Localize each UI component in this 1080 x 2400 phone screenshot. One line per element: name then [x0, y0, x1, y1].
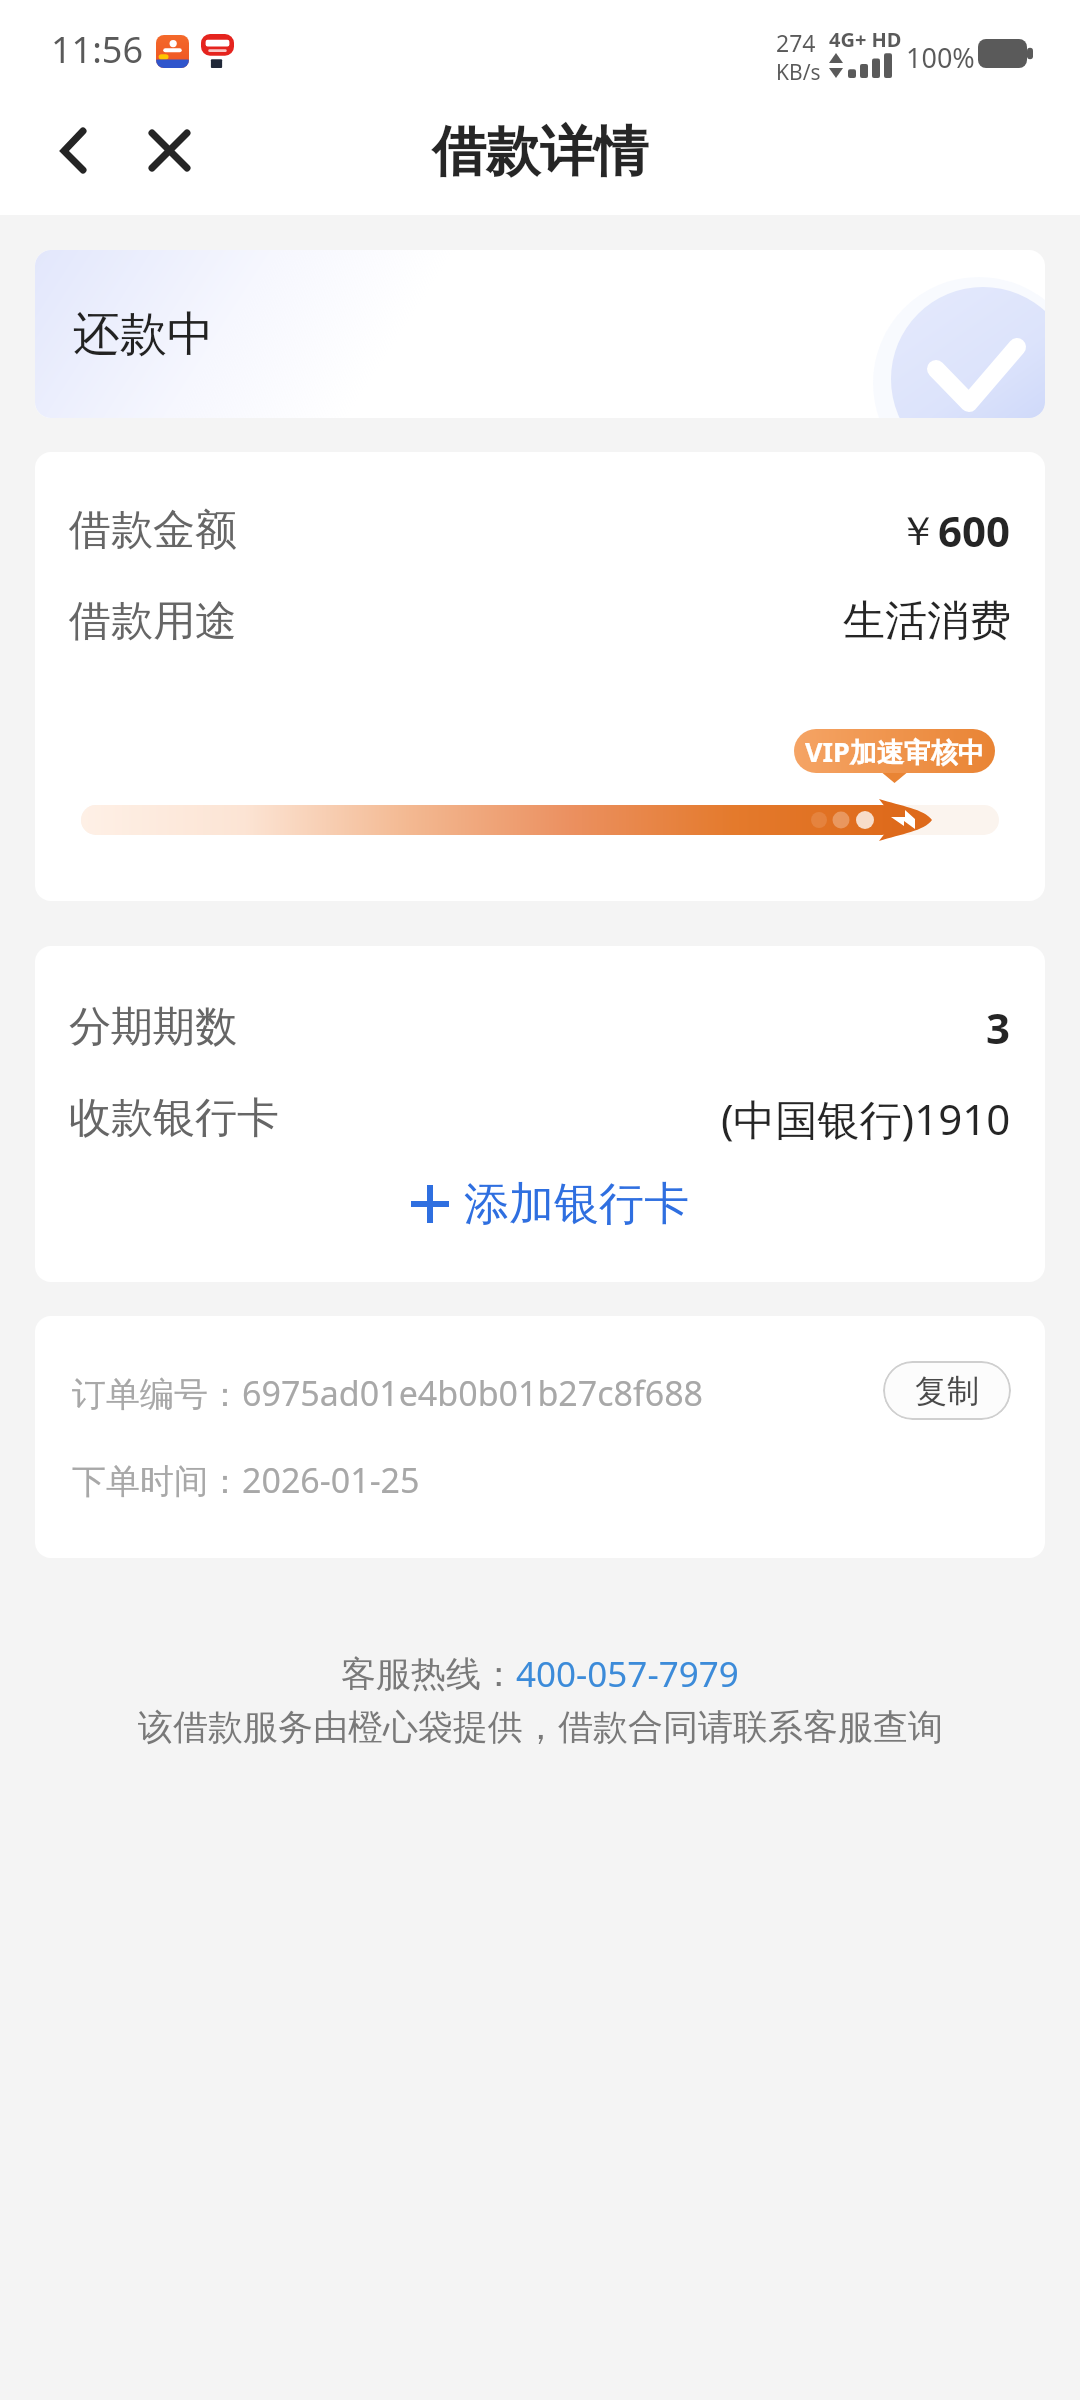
staticText: 11:56	[51, 25, 144, 74]
staticText: KB/s	[776, 58, 821, 87]
staticText: 添加银行卡	[464, 1176, 689, 1233]
button[interactable]: Close	[115, 98, 223, 204]
staticText: 还款中	[73, 305, 214, 364]
button[interactable]: 添加银行卡	[46, 1168, 1045, 1240]
staticText: 借款用途	[69, 595, 237, 648]
staticText: 该借款服务由橙心袋提供，借款合同请联系客服查询	[138, 1705, 943, 1749]
staticText: 订单编号：6975ad01e4b0b01b27c8f688	[72, 1370, 704, 1416]
staticText: 274	[776, 27, 816, 58]
staticText: 600	[938, 502, 1011, 559]
staticText: ￥	[898, 506, 938, 556]
staticText: 复制	[915, 1371, 979, 1411]
staticText: 4G+ HD	[829, 26, 902, 53]
staticText: 借款金额	[69, 504, 237, 557]
staticText: 收款银行卡	[69, 1092, 279, 1145]
staticText: VIP加速审核中	[805, 733, 985, 770]
button[interactable]: 400-057-7979	[516, 1650, 739, 1698]
staticText: 借款详情	[432, 118, 648, 186]
button[interactable]: 复制	[883, 1361, 1011, 1420]
staticText: 客服热线：	[341, 1652, 516, 1696]
staticText: 3	[986, 999, 1011, 1056]
staticText: 生活消费	[843, 595, 1011, 648]
staticText: 分期期数	[69, 1001, 237, 1054]
staticText: 100%	[906, 39, 975, 76]
staticText: (中国银行)1910	[721, 1090, 1011, 1147]
staticText: 下单时间：2026-01-25	[72, 1457, 420, 1503]
button[interactable]: Back	[19, 98, 127, 204]
